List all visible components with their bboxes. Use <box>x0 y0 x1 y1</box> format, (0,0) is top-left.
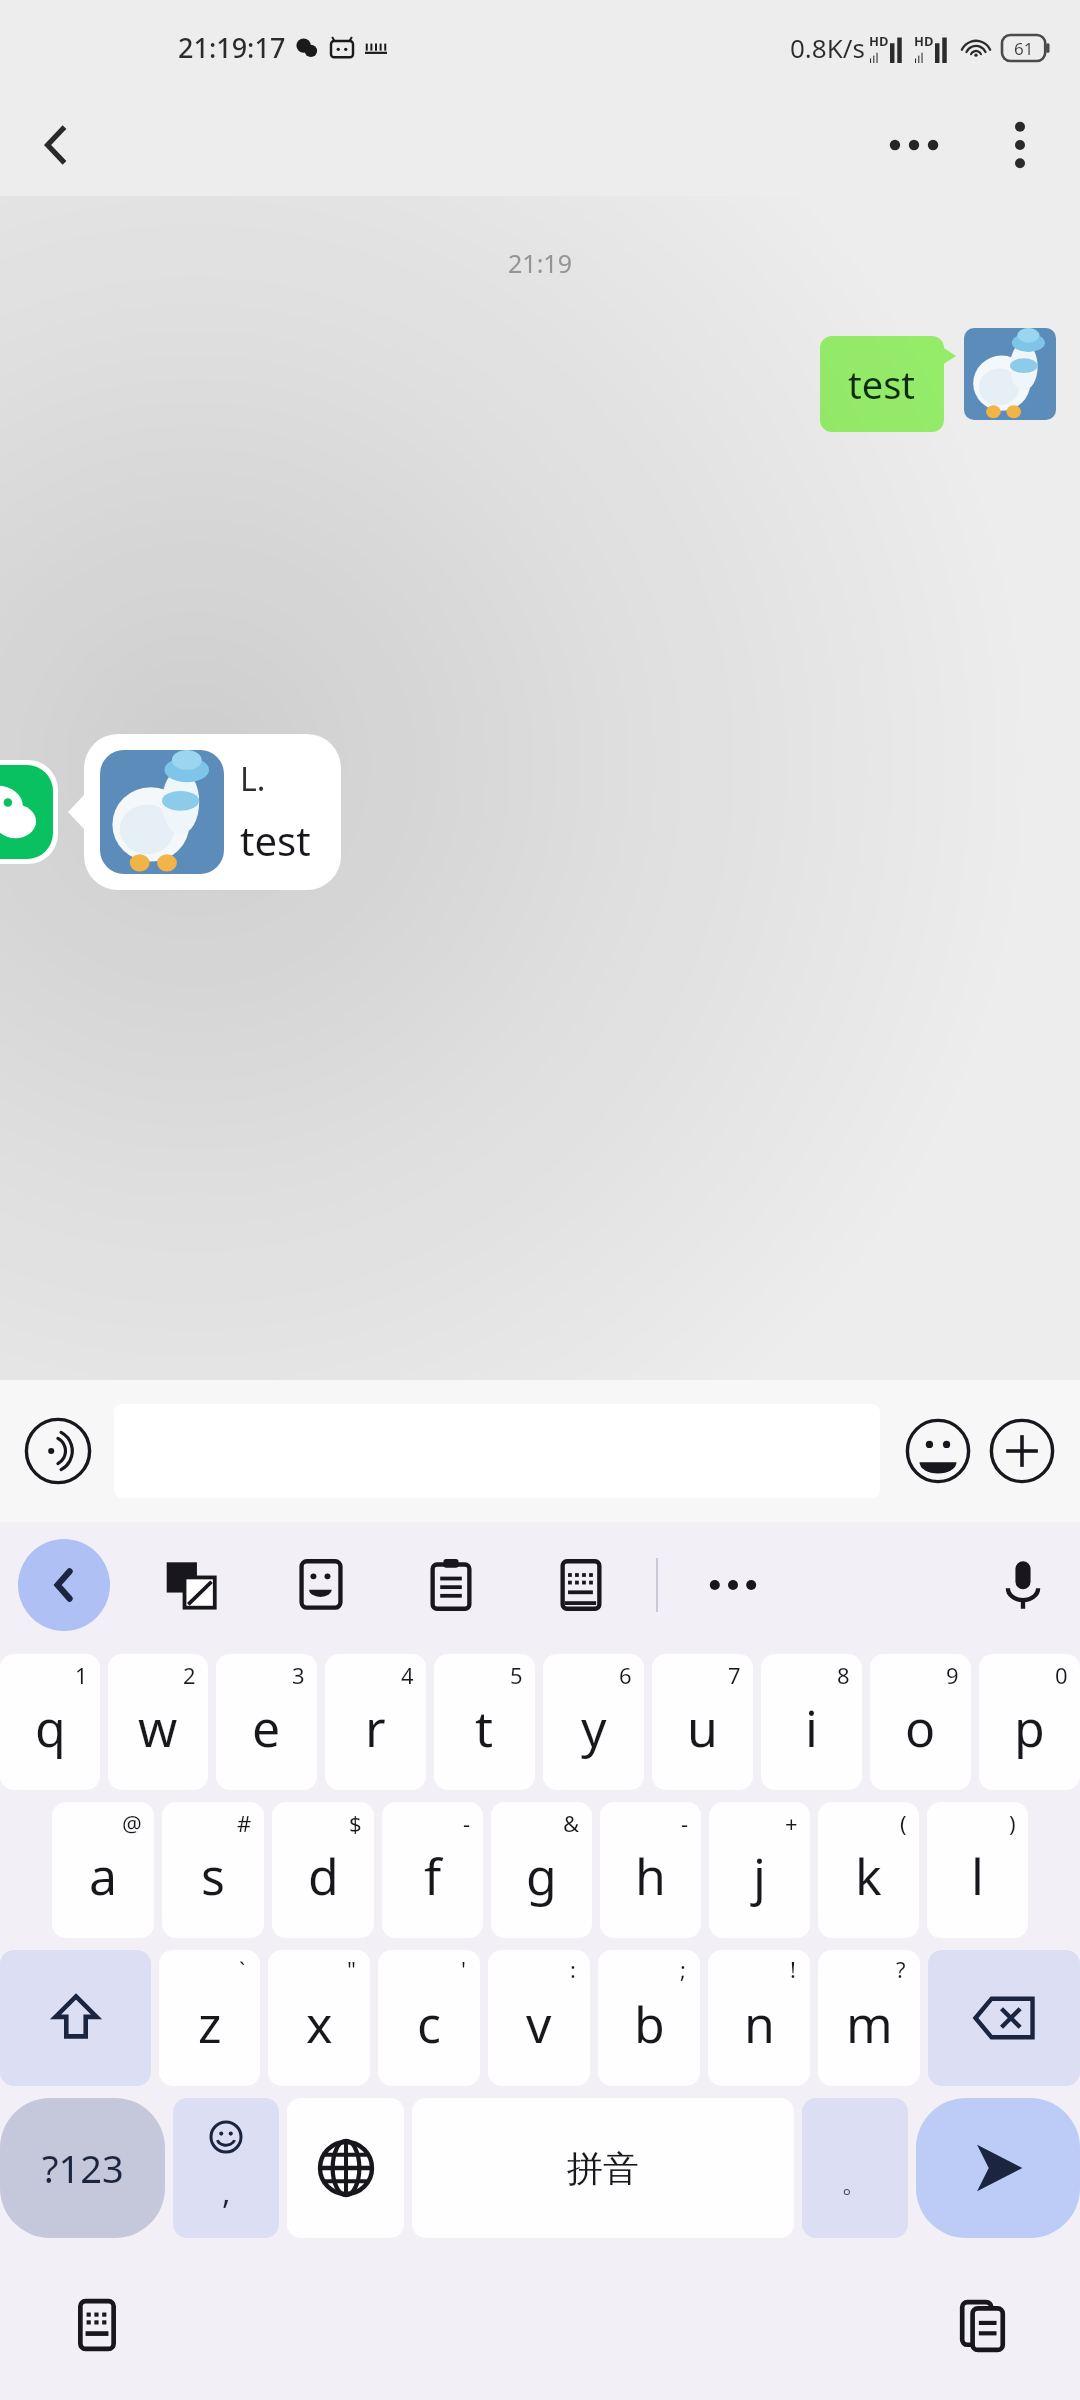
staticText: f <box>424 1842 442 1910</box>
button[interactable]: - <box>382 1802 483 1938</box>
staticText: HD <box>869 32 889 50</box>
button[interactable]: Voice input <box>20 1413 96 1489</box>
staticText: - <box>681 1808 689 1838</box>
button[interactable]: Translate <box>152 1546 230 1624</box>
staticText: p <box>1014 1694 1045 1762</box>
staticText: ' <box>461 1954 466 1984</box>
staticText: test <box>240 813 311 867</box>
button[interactable]: + <box>709 1802 810 1938</box>
staticText: g <box>526 1842 557 1910</box>
button[interactable]: - <box>600 1802 701 1938</box>
button[interactable]: & <box>491 1802 592 1938</box>
button[interactable]: ` <box>159 1950 260 2086</box>
staticText: & <box>563 1808 580 1838</box>
staticText: y <box>581 1694 607 1762</box>
button[interactable]: Clipboard <box>412 1546 490 1624</box>
staticText: q <box>35 1694 66 1762</box>
button[interactable]: 5 <box>434 1654 535 1790</box>
button[interactable]: 3 <box>216 1654 317 1790</box>
button[interactable]: Backspace <box>928 1950 1080 2086</box>
button[interactable]: L. <box>84 734 341 890</box>
button[interactable]: ' <box>378 1950 480 2086</box>
button[interactable]: ! <box>708 1950 810 2086</box>
button[interactable]: " <box>268 1950 370 2086</box>
staticText: HD <box>914 32 934 50</box>
staticText: , <box>222 2170 231 2214</box>
staticText: b <box>634 1990 665 2058</box>
button[interactable]: Stickers <box>282 1546 360 1624</box>
button[interactable]: 1 <box>0 1654 100 1790</box>
button[interactable]: $ <box>272 1802 374 1938</box>
button[interactable] <box>964 328 1056 420</box>
button[interactable]: Menu <box>978 103 1062 187</box>
staticText: - <box>463 1808 471 1838</box>
staticText: 3 <box>292 1660 305 1690</box>
staticText: t <box>475 1694 494 1762</box>
button[interactable]: Back <box>14 103 98 187</box>
button[interactable]: Send <box>916 2098 1080 2238</box>
button[interactable]: WeChat bubble <box>0 765 53 859</box>
staticText: ?123 <box>42 2142 124 2194</box>
staticText: 拼音 <box>567 2146 639 2191</box>
staticText: $ <box>349 1808 362 1838</box>
button[interactable]: Keyboard layout <box>542 1546 620 1624</box>
button[interactable]: ( <box>818 1802 919 1938</box>
button[interactable]: 9 <box>870 1654 971 1790</box>
button[interactable]: Emoji and comma <box>173 2098 279 2238</box>
button[interactable]: ?123 <box>0 2098 165 2238</box>
button[interactable]: 8 <box>761 1654 862 1790</box>
staticText: ; <box>680 1954 686 1984</box>
button[interactable]: Shift <box>0 1950 151 2086</box>
button[interactable]: : <box>488 1950 590 2086</box>
button[interactable]: Voice <box>984 1546 1062 1624</box>
staticText: m <box>846 1990 893 2058</box>
staticText: e <box>252 1694 281 1762</box>
button[interactable]: 。 <box>802 2098 908 2238</box>
staticText: o <box>905 1694 936 1762</box>
staticText: ( <box>900 1808 907 1838</box>
staticText: : <box>570 1954 576 1984</box>
button[interactable]: More functions <box>984 1413 1060 1489</box>
staticText: + <box>785 1808 798 1838</box>
staticText: 61 <box>1014 37 1034 60</box>
staticText: w <box>138 1694 178 1762</box>
button[interactable]: ; <box>598 1950 700 2086</box>
button[interactable]: test <box>820 336 944 432</box>
button[interactable]: 2 <box>108 1654 208 1790</box>
button[interactable]: Emoji <box>900 1413 976 1489</box>
staticText: c <box>417 1990 441 2058</box>
staticText: z <box>198 1990 222 2058</box>
staticText: 0 <box>1055 1660 1068 1690</box>
staticText: 8 <box>837 1660 850 1690</box>
staticText: 1 <box>75 1660 88 1690</box>
button[interactable]: Change language <box>287 2098 404 2238</box>
button[interactable]: # <box>162 1802 264 1938</box>
button[interactable]: Collapse toolbar <box>18 1539 110 1631</box>
button[interactable]: 6 <box>543 1654 644 1790</box>
staticText: 21:19 <box>0 246 1080 280</box>
button[interactable]: More <box>694 1546 772 1624</box>
staticText: s <box>201 1842 225 1910</box>
staticText: 5 <box>510 1660 523 1690</box>
staticText: k <box>855 1842 882 1910</box>
staticText: v <box>526 1990 552 2058</box>
staticText: 6 <box>619 1660 632 1690</box>
button[interactable]: ) <box>927 1802 1028 1938</box>
button[interactable]: Switch keyboard <box>54 2282 140 2368</box>
button[interactable]: 4 <box>325 1654 426 1790</box>
button[interactable]: Clipboard history <box>940 2282 1026 2368</box>
staticText: 9 <box>946 1660 959 1690</box>
staticText: " <box>347 1954 356 1984</box>
button[interactable]: 7 <box>652 1654 753 1790</box>
staticText: r <box>365 1694 386 1762</box>
button[interactable]: 0 <box>979 1654 1080 1790</box>
staticText: ? <box>896 1954 906 1984</box>
staticText: ) <box>1009 1808 1016 1838</box>
staticText: 7 <box>728 1660 741 1690</box>
button[interactable]: 拼音 <box>412 2098 794 2238</box>
button[interactable]: @ <box>52 1802 154 1938</box>
button[interactable]: ? <box>818 1950 920 2086</box>
staticText: 21:19:17 <box>178 29 286 66</box>
button[interactable]: More options <box>872 103 956 187</box>
